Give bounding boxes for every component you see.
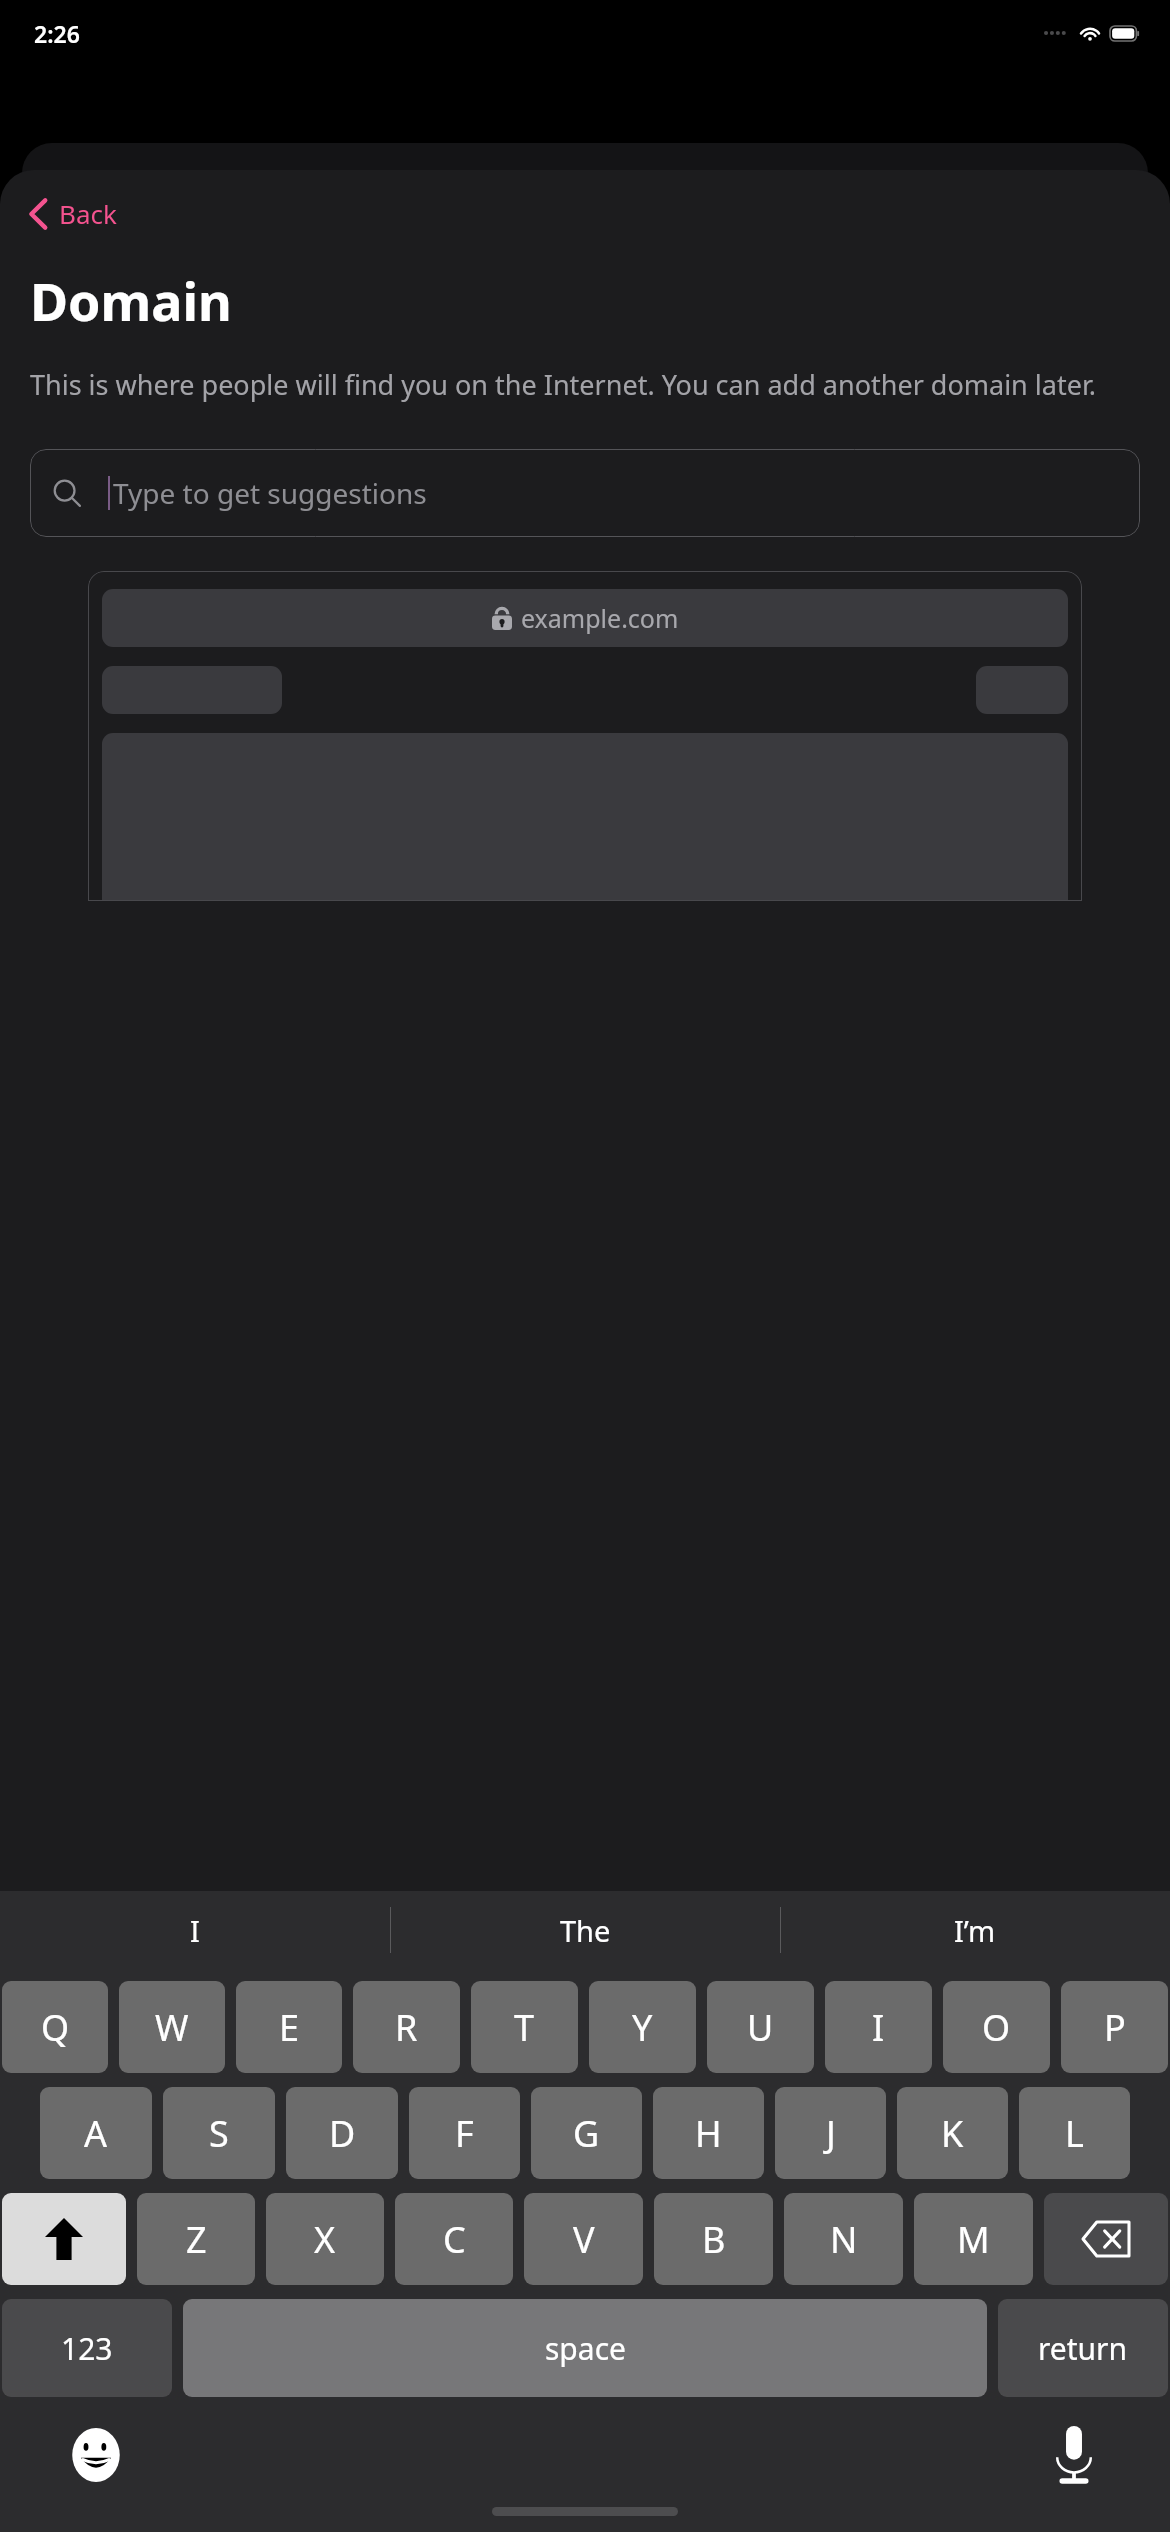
button[interactable]: Dictation: [1036, 2417, 1112, 2493]
staticText: X: [314, 2215, 336, 2264]
button[interactable]: K: [897, 2087, 1008, 2179]
button[interactable]: P: [1061, 1981, 1168, 2073]
button[interactable]: G: [531, 2087, 642, 2179]
button[interactable]: Z: [137, 2193, 255, 2285]
button[interactable]: U: [707, 1981, 814, 2073]
staticText: H: [695, 2109, 722, 2158]
staticText: O: [982, 2003, 1011, 2052]
staticText: return: [1038, 2328, 1128, 2369]
button[interactable]: Back: [20, 190, 125, 237]
staticText: J: [826, 2109, 836, 2158]
button[interactable]: I: [825, 1981, 932, 2073]
staticText: C: [443, 2215, 466, 2264]
staticText: I: [872, 2003, 885, 2052]
staticText: G: [573, 2109, 600, 2158]
staticText: Y: [632, 2003, 653, 2052]
button[interactable]: T: [471, 1981, 578, 2073]
button[interactable]: O: [943, 1981, 1050, 2073]
staticText: V: [573, 2215, 595, 2264]
button[interactable]: N: [784, 2193, 903, 2285]
button[interactable]: A: [40, 2087, 152, 2179]
button[interactable]: M: [914, 2193, 1033, 2285]
button[interactable]: Backspace: [1044, 2193, 1168, 2285]
button[interactable]: Shift: [2, 2193, 126, 2285]
button[interactable]: V: [524, 2193, 643, 2285]
button[interactable]: Emoji keyboard: [58, 2417, 134, 2493]
button[interactable]: R: [353, 1981, 460, 2073]
staticText: B: [702, 2215, 726, 2264]
staticText: Q: [41, 2003, 70, 2052]
button[interactable]: J: [775, 2087, 886, 2179]
button[interactable]: H: [653, 2087, 764, 2179]
staticText: Back: [59, 196, 117, 231]
button[interactable]: I: [0, 1891, 390, 1969]
button[interactable]: S: [163, 2087, 275, 2179]
staticText: R: [395, 2003, 418, 2052]
button[interactable]: 123: [2, 2299, 172, 2397]
staticText: U: [747, 2003, 774, 2052]
button[interactable]: B: [654, 2193, 773, 2285]
staticText: Type to get suggestions: [113, 474, 427, 512]
button[interactable]: return: [998, 2299, 1168, 2397]
staticText: Z: [186, 2215, 207, 2264]
staticText: I: [190, 1911, 200, 1950]
button[interactable]: X: [266, 2193, 384, 2285]
button[interactable]: W: [119, 1981, 225, 2073]
button[interactable]: space: [183, 2299, 987, 2397]
button[interactable]: Type to get suggestions: [30, 449, 1140, 537]
staticText: P: [1104, 2003, 1126, 2052]
staticText: 123: [61, 2328, 113, 2369]
button[interactable]: F: [409, 2087, 520, 2179]
staticText: L: [1065, 2109, 1084, 2158]
staticText: M: [957, 2215, 990, 2264]
button[interactable]: C: [395, 2193, 513, 2285]
staticText: I’m: [954, 1911, 996, 1950]
staticText: The: [560, 1911, 611, 1950]
button[interactable]: I’m: [780, 1891, 1170, 1969]
button[interactable]: E: [236, 1981, 342, 2073]
staticText: This is where people will find you on th…: [30, 366, 1096, 403]
staticText: T: [514, 2003, 535, 2052]
button[interactable]: L: [1019, 2087, 1130, 2179]
staticText: D: [329, 2109, 356, 2158]
staticText: W: [155, 2003, 189, 2052]
staticText: K: [941, 2109, 964, 2158]
staticText: F: [455, 2109, 474, 2158]
staticText: N: [830, 2215, 858, 2264]
staticText: S: [209, 2109, 229, 2158]
staticText: A: [84, 2109, 108, 2158]
button[interactable]: Q: [2, 1981, 108, 2073]
staticText: Domain: [30, 265, 232, 336]
staticText: 2:26: [34, 18, 80, 49]
staticText: space: [545, 2328, 626, 2369]
button[interactable]: Y: [589, 1981, 696, 2073]
staticText: E: [279, 2003, 300, 2052]
staticText: example.com: [521, 601, 679, 635]
button[interactable]: The: [390, 1891, 780, 1969]
button[interactable]: D: [286, 2087, 398, 2179]
